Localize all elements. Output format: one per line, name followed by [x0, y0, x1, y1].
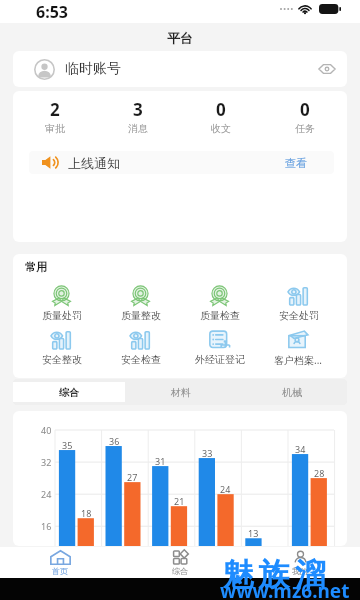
staticText: 33 — [202, 447, 213, 459]
staticText: 24 — [220, 483, 231, 495]
button[interactable]: 2 — [13, 98, 96, 135]
staticText: 24 — [41, 488, 52, 500]
staticText: 外经证登记 — [195, 353, 245, 366]
staticText: 质量处罚 — [42, 309, 82, 322]
staticText: 质量检查 — [200, 309, 240, 322]
staticText: 安全处罚 — [279, 309, 319, 322]
staticText: 34 — [295, 443, 306, 455]
button[interactable]: 0 — [263, 98, 347, 135]
staticText: 16 — [41, 520, 52, 532]
button[interactable]: 综合 — [13, 382, 125, 402]
staticText: 材料 — [171, 386, 191, 399]
staticText: 3 — [133, 98, 143, 121]
staticText: 质量整改 — [121, 309, 161, 322]
staticText: www.mz6.net — [220, 578, 350, 600]
staticText: 综合 — [172, 566, 188, 576]
button[interactable]: 3 — [96, 98, 179, 135]
staticText: 32 — [41, 456, 52, 468]
button[interactable]: 上线通知 — [29, 151, 334, 174]
staticText: 13 — [248, 527, 259, 539]
button[interactable]: 临时账号 — [13, 51, 347, 87]
button[interactable]: 我的 — [240, 547, 360, 578]
staticText: 2 — [50, 98, 60, 121]
button[interactable]: 质量处罚 — [22, 285, 101, 322]
button[interactable]: 首页 — [0, 547, 120, 578]
staticText: 安全检查 — [121, 353, 161, 366]
staticText: 审批 — [45, 122, 65, 135]
staticText: 魅族溜 — [220, 555, 328, 594]
staticText: 28 — [314, 467, 325, 479]
button[interactable]: 质量检查 — [180, 285, 259, 322]
staticText: 消息 — [128, 122, 148, 135]
staticText: 机械 — [282, 386, 302, 399]
staticText: 0 — [300, 98, 310, 121]
button[interactable]: 机械 — [236, 382, 347, 402]
staticText: 查看 — [285, 156, 307, 170]
button[interactable]: 外经证登记 — [180, 329, 259, 366]
staticText: 平台 — [167, 30, 193, 46]
button[interactable]: 安全处罚 — [259, 285, 338, 322]
staticText: 31 — [155, 455, 166, 467]
button[interactable]: 安全整改 — [22, 329, 101, 366]
staticText: 我的 — [292, 566, 308, 576]
staticText: 首页 — [52, 566, 68, 576]
button[interactable]: 客户档案... — [259, 329, 338, 367]
staticText: 收文 — [211, 122, 231, 135]
button[interactable]: 安全检查 — [101, 329, 180, 366]
staticText: 27 — [127, 471, 138, 483]
staticText: 临时账号 — [65, 60, 121, 78]
staticText: 0 — [216, 98, 226, 121]
staticText: 35 — [62, 439, 73, 451]
staticText: 综合 — [59, 386, 79, 399]
button[interactable]: 0 — [179, 98, 263, 135]
button[interactable]: 质量整改 — [101, 285, 180, 322]
staticText: 安全整改 — [42, 353, 82, 366]
staticText: 21 — [174, 495, 185, 507]
staticText: 40 — [41, 424, 52, 436]
staticText: 任务 — [295, 122, 315, 135]
staticText: 18 — [81, 507, 92, 519]
staticText: 上线通知 — [68, 155, 120, 171]
button[interactable]: 材料 — [125, 382, 236, 402]
staticText: 常用 — [25, 260, 47, 274]
staticText: 36 — [109, 435, 120, 447]
staticText: 6:53 — [36, 1, 68, 23]
button[interactable]: Toggle account visibility — [318, 60, 336, 78]
button[interactable]: 综合 — [120, 547, 240, 578]
staticText: 客户档案... — [274, 353, 323, 367]
